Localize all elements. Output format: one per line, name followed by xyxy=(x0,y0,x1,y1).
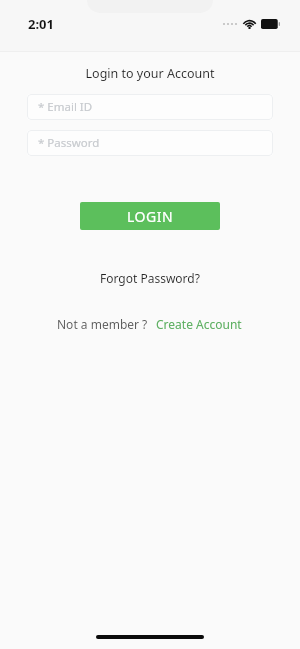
staticText: Forgot Password? xyxy=(100,270,200,286)
staticText: LOGIN xyxy=(127,207,174,226)
staticText: Not a member ? xyxy=(57,316,148,332)
staticText: Create Account xyxy=(156,316,242,332)
staticText: 2:01 xyxy=(28,15,54,33)
button[interactable]: LOGIN xyxy=(80,202,220,230)
button[interactable]: Forgot Password? xyxy=(92,266,208,290)
other: Wi-Fi xyxy=(243,19,256,29)
other: Cellular signal xyxy=(222,20,238,28)
button[interactable]: Create Account xyxy=(154,313,244,335)
staticText: * Password xyxy=(38,135,100,151)
staticText: * Email ID xyxy=(38,99,93,115)
staticText: Login to your Account xyxy=(0,65,300,82)
button[interactable]: * Email ID xyxy=(27,94,273,120)
other: Battery xyxy=(261,19,280,29)
button[interactable]: * Password xyxy=(27,130,273,156)
